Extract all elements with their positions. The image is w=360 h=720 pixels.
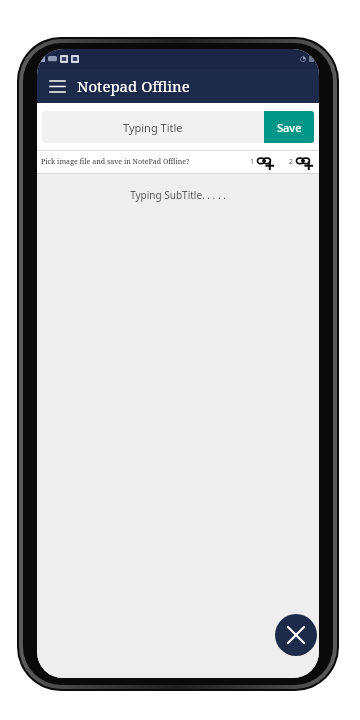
- staticText: Save: [277, 120, 302, 135]
- button[interactable]: Add link 2: [288, 155, 313, 169]
- staticText: Notepad Offline: [77, 76, 190, 96]
- staticText: ◔: [300, 55, 307, 63]
- staticText: 1: [250, 157, 255, 167]
- staticText: Typing Title: [123, 120, 183, 135]
- staticText: Typing SubTitle. . . . .: [130, 188, 226, 202]
- staticText: Pick image file and save in NotePad Offl…: [41, 157, 190, 167]
- button[interactable]: Add link 1: [249, 155, 274, 169]
- button[interactable]: Open navigation menu: [43, 72, 71, 100]
- button[interactable]: Close: [275, 614, 317, 656]
- button[interactable]: Typing Title: [42, 111, 264, 143]
- button[interactable]: Typing SubTitle. . . . .: [37, 188, 319, 202]
- staticText: 2: [289, 157, 294, 167]
- button[interactable]: Save: [264, 111, 314, 143]
